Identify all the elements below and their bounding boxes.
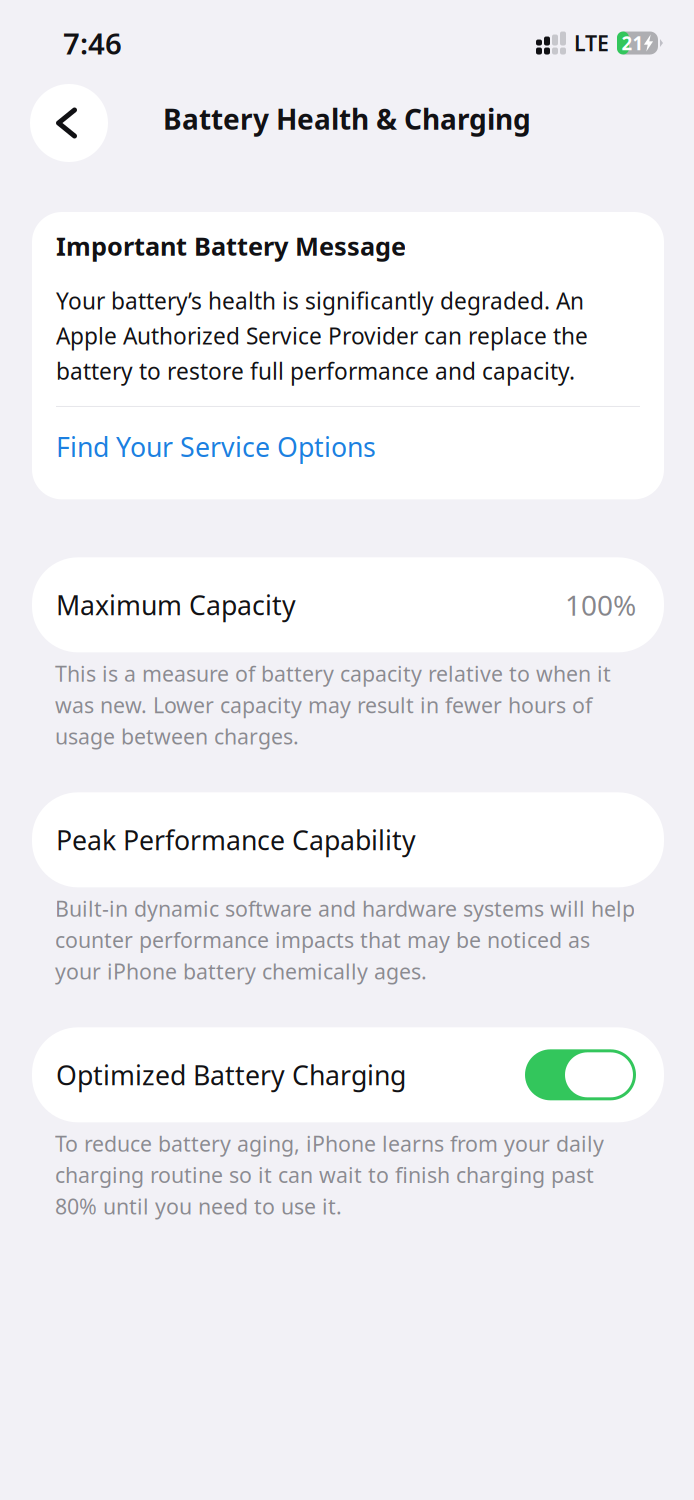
staticText: This is a measure of battery capacity re… (55, 659, 611, 750)
staticText: Battery Health & Charging (163, 100, 531, 138)
staticText: 21 (621, 31, 643, 55)
staticText: Peak Performance Capability (56, 822, 416, 857)
staticText: Find Your Service Options (56, 429, 376, 464)
staticText: LTE (574, 29, 609, 57)
staticText: To reduce battery aging, iPhone learns f… (55, 1129, 604, 1220)
button[interactable]: Back (30, 84, 108, 162)
staticText: Maximum Capacity (56, 587, 296, 623)
staticText: 100% (565, 586, 636, 623)
staticText: 7:46 (63, 23, 122, 62)
button[interactable]: Optimized Battery Charging (32, 1027, 664, 1122)
button[interactable]: Find Your Service Options (56, 429, 376, 464)
staticText: Optimized Battery Charging (56, 1057, 406, 1092)
staticText: Built-in dynamic software and hardware s… (55, 894, 635, 985)
staticText: Your battery’s health is significantly d… (56, 286, 588, 386)
staticText: Important Battery Message (56, 229, 406, 263)
